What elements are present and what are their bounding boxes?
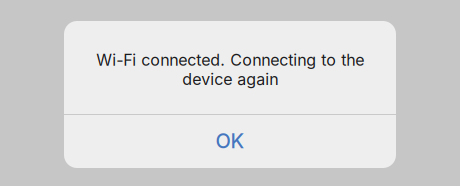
staticText: OK (215, 129, 244, 153)
button[interactable]: OK (64, 115, 396, 168)
staticText: Wi-Fi connected. Connecting to the devic… (96, 50, 364, 89)
